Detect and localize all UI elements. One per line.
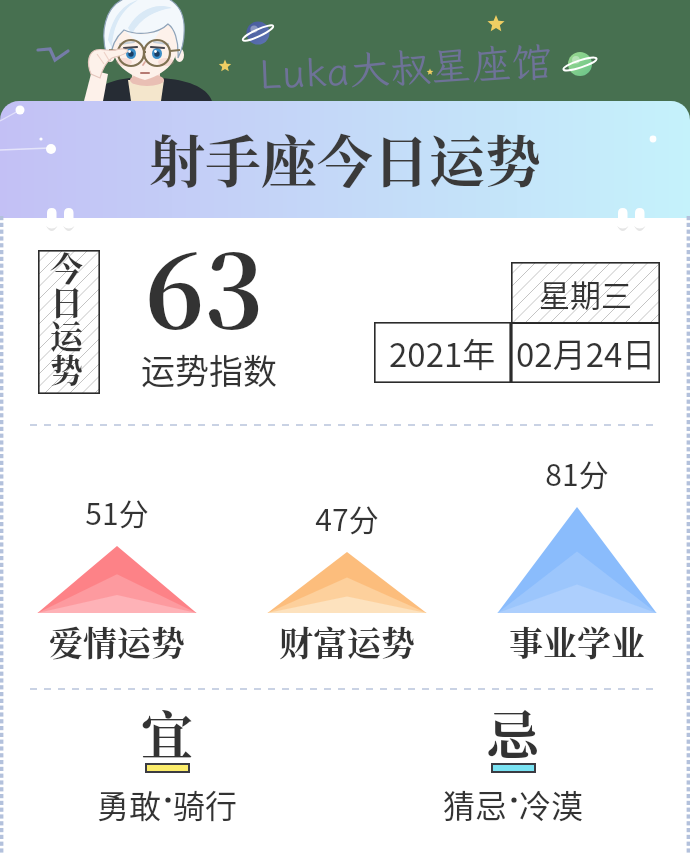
staticText: 51分 (85, 490, 149, 533)
staticText: 势 (50, 345, 83, 392)
staticText: 爱情运势 (49, 617, 185, 666)
staticText: 宜 (141, 695, 194, 770)
button[interactable]: 忌 (383, 705, 643, 853)
staticText: 81分 (545, 451, 609, 494)
staticText: 骑行 (173, 781, 238, 827)
button[interactable]: 宜 (37, 705, 297, 853)
staticText: 运势指数 (141, 345, 277, 394)
staticText: 02月24日 (516, 329, 656, 377)
staticText: 今 (50, 243, 83, 290)
staticText: 2021年 (389, 329, 496, 377)
staticText: 猜忌 (443, 781, 508, 827)
staticText: 63 (145, 213, 264, 357)
staticText: 射手座今日运势 (149, 118, 541, 198)
staticText: 冷漠 (519, 781, 584, 827)
staticText: 日 (50, 277, 83, 324)
staticText: 47分 (315, 496, 379, 539)
staticText: Luka大叔星座馆 (258, 35, 554, 100)
staticText: 忌 (487, 695, 540, 770)
staticText: 勇敢 (97, 781, 162, 827)
staticText: 财富运势 (279, 617, 415, 666)
staticText: 运 (50, 311, 83, 358)
staticText: 事业学业 (509, 617, 645, 666)
staticText: 星期三 (539, 271, 632, 316)
